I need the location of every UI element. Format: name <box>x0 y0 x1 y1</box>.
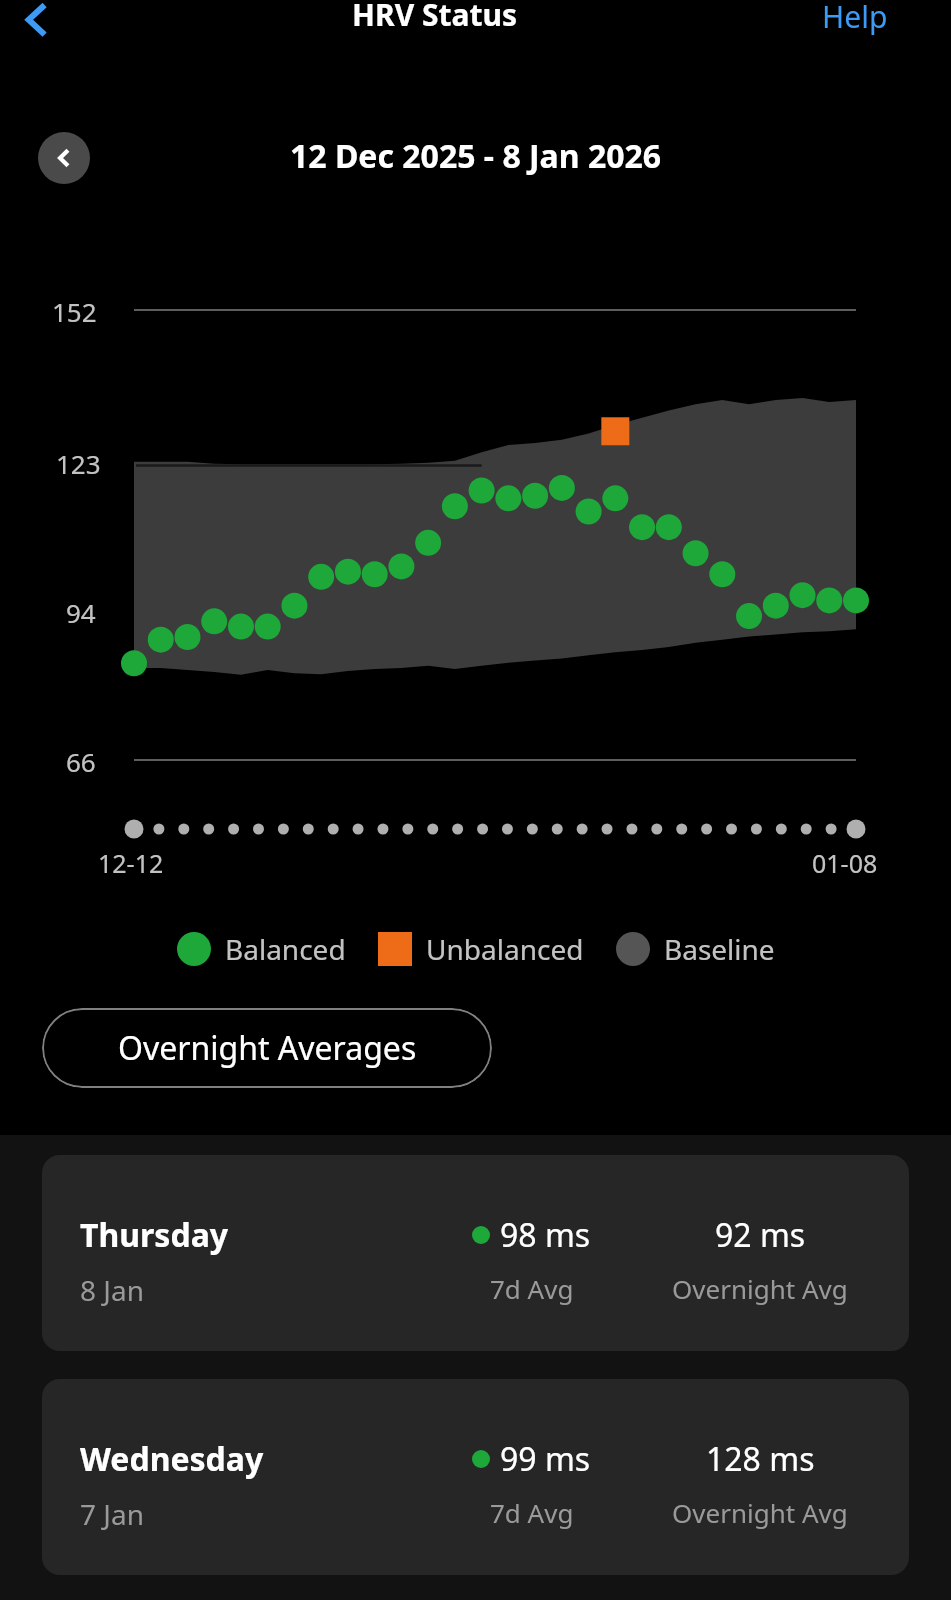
button[interactable]: Thursday <box>42 1155 909 1351</box>
button[interactable]: Help <box>790 0 920 46</box>
staticText: 128 ms <box>706 1437 815 1481</box>
button[interactable]: Back <box>6 0 68 50</box>
staticText: 8 Jan <box>80 1271 144 1309</box>
button[interactable]: Wednesday <box>42 1379 909 1575</box>
staticText: Overnight Averages <box>118 1026 417 1070</box>
staticText: 123 <box>56 446 101 481</box>
staticText: 98 ms <box>500 1213 591 1257</box>
staticText: 12 Dec 2025 - 8 Jan 2026 <box>290 134 662 178</box>
staticText: 94 <box>66 595 96 630</box>
staticText: 99 ms <box>500 1437 591 1481</box>
staticText: 66 <box>66 744 96 779</box>
button[interactable]: Overnight Averages <box>42 1008 492 1088</box>
staticText: Unbalanced <box>426 930 584 968</box>
staticText: 92 ms <box>715 1213 806 1257</box>
staticText: Balanced <box>225 930 346 968</box>
staticText: Help <box>822 0 888 37</box>
button[interactable]: Previous period <box>38 132 90 184</box>
staticText: Overnight Avg <box>672 1271 848 1306</box>
staticText: Baseline <box>664 930 775 968</box>
staticText: Overnight Avg <box>672 1495 848 1530</box>
staticText: Wednesday <box>80 1437 264 1481</box>
staticText: 152 <box>52 294 97 329</box>
staticText: 7d Avg <box>490 1271 574 1306</box>
staticText: 01-08 <box>812 846 878 880</box>
staticText: HRV Status <box>352 0 518 35</box>
staticText: Thursday <box>80 1213 229 1257</box>
staticText: 7d Avg <box>490 1495 574 1530</box>
staticText: 12-12 <box>98 846 164 880</box>
staticText: 7 Jan <box>80 1495 144 1533</box>
